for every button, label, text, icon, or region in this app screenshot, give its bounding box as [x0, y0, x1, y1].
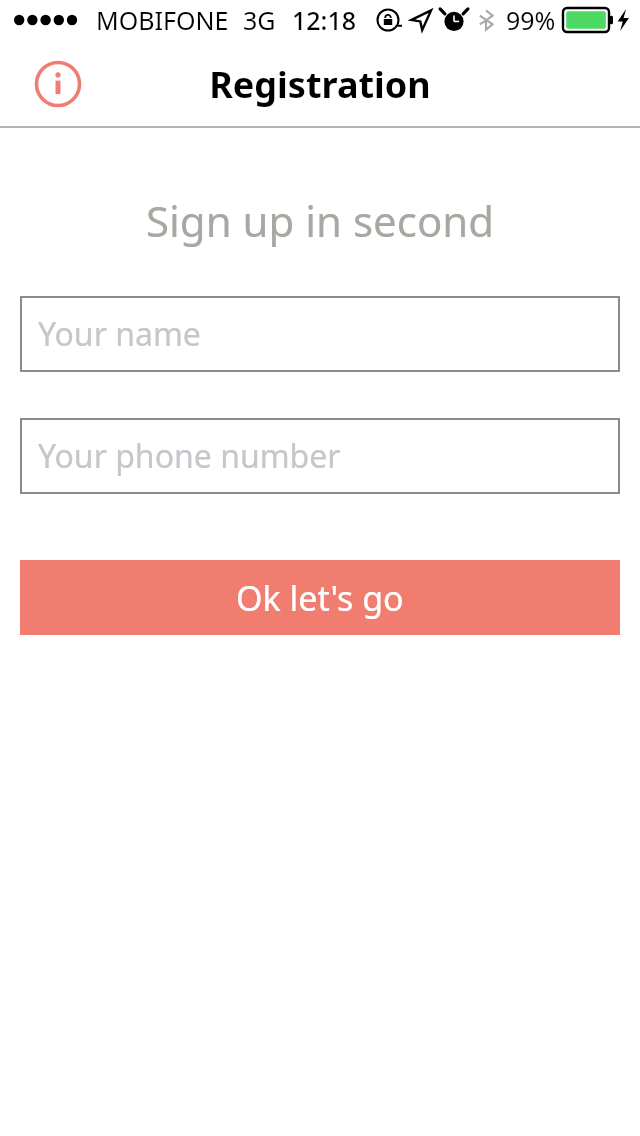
staticText: Ok let's go — [236, 575, 404, 621]
staticText: 3G — [243, 3, 276, 37]
button[interactable]: Your phone number — [20, 418, 620, 494]
staticText: Sign up in second — [0, 192, 640, 249]
staticText: Your phone number — [38, 434, 341, 478]
staticText: 12:18 — [292, 3, 357, 37]
button[interactable]: Ok let's go — [20, 560, 620, 635]
staticText: 99% — [506, 3, 556, 37]
staticText: Registration — [0, 60, 640, 109]
button[interactable]: Your name — [20, 296, 620, 372]
staticText: MOBIFONE — [96, 3, 229, 37]
staticText: Your name — [38, 312, 201, 356]
button[interactable]: Information — [30, 56, 86, 112]
